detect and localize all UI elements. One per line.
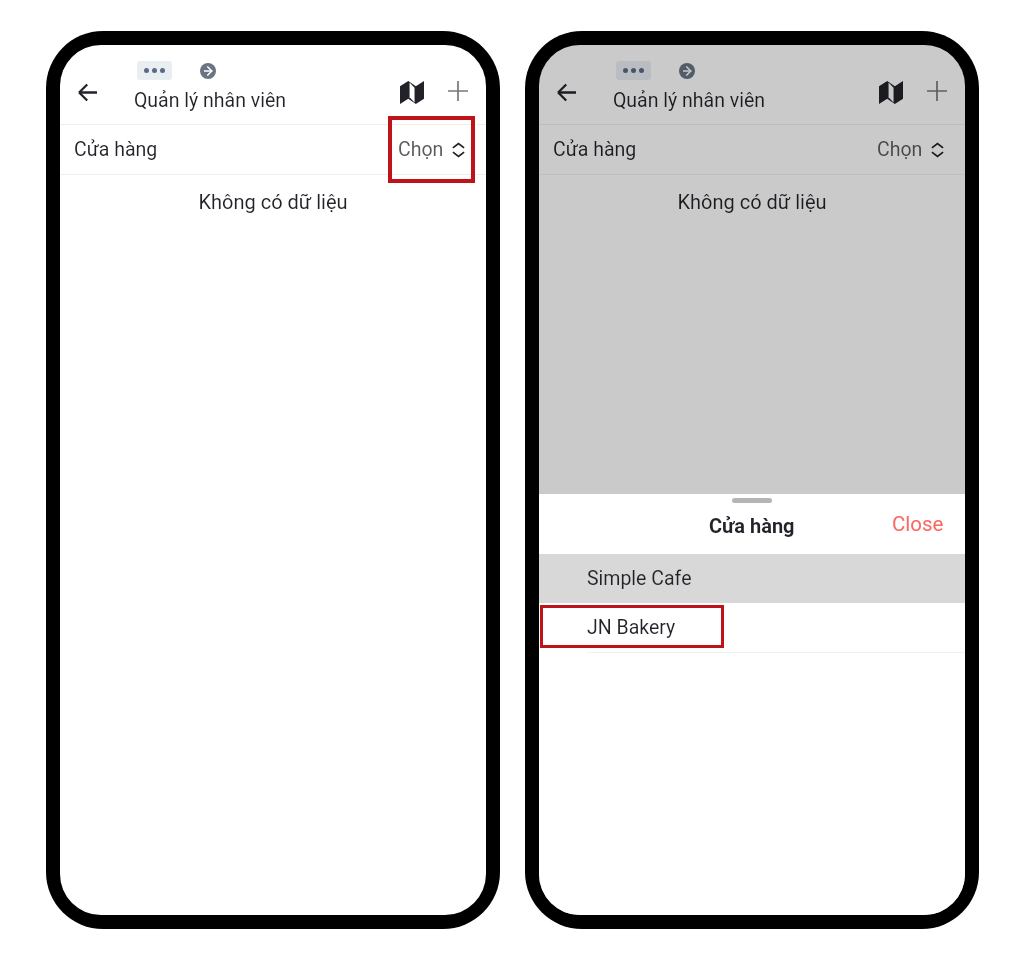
button[interactable]: Add <box>439 72 477 110</box>
button[interactable]: Back <box>548 74 584 110</box>
button[interactable]: Next <box>200 63 216 79</box>
button[interactable]: Map <box>872 73 910 111</box>
staticText: Cửa hàng <box>553 138 637 161</box>
button[interactable]: More options <box>616 61 651 80</box>
staticText: Quản lý nhân viên <box>60 89 360 112</box>
button[interactable]: Back <box>69 74 105 110</box>
staticText: Quản lý nhân viên <box>539 89 839 112</box>
staticText: Không có dữ liệu <box>539 190 965 213</box>
button[interactable]: Cửa hàng <box>60 125 486 174</box>
staticText: JN Bakery <box>587 616 676 639</box>
button[interactable]: Close <box>871 503 965 545</box>
button[interactable]: JN Bakery <box>539 603 965 652</box>
staticText: Không có dữ liệu <box>60 190 486 213</box>
button[interactable]: More options <box>137 61 172 80</box>
staticText: Chọn <box>398 138 444 161</box>
staticText: Close <box>892 512 944 536</box>
button[interactable]: Map <box>393 73 431 111</box>
staticText: Cửa hàng <box>74 138 158 161</box>
staticText: Simple Cafe <box>587 567 692 590</box>
button[interactable]: Simple Cafe <box>539 554 965 603</box>
button[interactable]: Add <box>918 72 956 110</box>
staticText: Chọn <box>877 138 923 161</box>
staticText: Cửa hàng <box>709 514 795 537</box>
button[interactable]: Cửa hàng <box>539 125 965 174</box>
button[interactable]: Next <box>679 63 695 79</box>
